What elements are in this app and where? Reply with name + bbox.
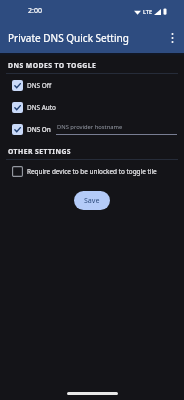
button[interactable]: DNS Off: [0, 74, 184, 96]
button[interactable]: Save: [74, 191, 110, 210]
staticText: 2:00: [28, 6, 42, 16]
staticText: Require device to be unlocked to toggle …: [27, 167, 157, 176]
button[interactable]: Require device to be unlocked to toggle …: [0, 160, 184, 182]
staticText: Save: [84, 196, 100, 206]
button[interactable]: More options: [160, 23, 184, 53]
button[interactable]: DNS On: [0, 118, 184, 140]
staticText: DNS MODES TO TOGGLE: [8, 61, 97, 70]
staticText: DNS Auto: [27, 103, 56, 112]
staticText: DNS On: [27, 125, 51, 134]
staticText: DNS Off: [27, 81, 52, 90]
staticText: LTE: [143, 8, 152, 15]
button[interactable]: DNS Auto: [0, 96, 184, 118]
staticText: DNS provider hostname: [57, 123, 123, 131]
staticText: Private DNS Quick Setting: [8, 31, 129, 45]
staticText: OTHER SETTINGS: [8, 147, 71, 156]
